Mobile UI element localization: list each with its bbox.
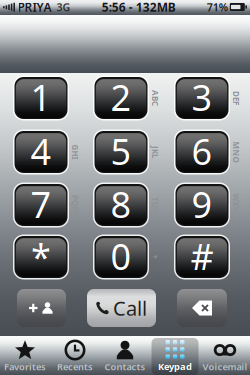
staticText: 0 [110, 232, 131, 280]
staticText: 3 [191, 73, 212, 121]
staticText: 1 [30, 73, 51, 121]
staticText: Favorites [4, 361, 46, 373]
button[interactable]: 0 [92, 234, 149, 280]
button[interactable]: Delete [177, 289, 227, 327]
button[interactable]: * [12, 234, 69, 280]
staticText: Keypad [158, 360, 192, 372]
staticText: 7 [30, 180, 51, 228]
button[interactable]: 2 [92, 75, 149, 121]
button[interactable]: Contacts [100, 336, 150, 375]
staticText: 5:56 - 132MB [102, 0, 176, 15]
staticText: # [190, 232, 213, 280]
staticText: WXYZ [224, 200, 247, 210]
button[interactable]: Recents [50, 336, 100, 375]
button[interactable]: Call [87, 289, 156, 327]
button[interactable]: 6 [173, 129, 230, 175]
staticText: 5 [110, 127, 131, 175]
button[interactable]: Add contact [17, 289, 66, 327]
staticText: 2 [110, 73, 131, 121]
button[interactable]: 3 [173, 75, 230, 121]
staticText: PQRS [65, 200, 85, 210]
staticText: Contacts [104, 361, 145, 373]
button[interactable]: 4 [12, 129, 69, 175]
staticText: 71% [207, 0, 228, 14]
button[interactable]: 5 [92, 129, 149, 175]
staticText: JKL [149, 147, 161, 157]
staticText: 6 [191, 127, 212, 175]
button[interactable]: Favorites [0, 336, 50, 375]
staticText: 3G [56, 0, 70, 14]
staticText: GHI [67, 147, 82, 157]
button[interactable]: Keypad [150, 336, 200, 375]
button[interactable]: Voicemail [200, 336, 250, 375]
staticText: Recents [57, 361, 93, 373]
button[interactable]: 9 [173, 182, 230, 228]
staticText: * [31, 232, 51, 280]
button[interactable]: 8 [92, 182, 149, 228]
staticText: MNO [225, 147, 246, 157]
staticText: ABC [147, 93, 163, 103]
staticText: + [152, 252, 157, 262]
button[interactable]: # [173, 234, 230, 280]
button[interactable]: 1 [12, 75, 69, 121]
button[interactable]: 7 [12, 182, 69, 228]
staticText: Call [113, 295, 147, 321]
staticText: 8 [110, 180, 131, 228]
staticText: 4 [30, 127, 51, 175]
staticText: Voicemail [202, 361, 247, 373]
staticText: TUV [147, 200, 163, 210]
staticText: PRIYA [17, 0, 51, 15]
staticText: 9 [191, 180, 212, 228]
staticText: DEF [229, 93, 243, 103]
